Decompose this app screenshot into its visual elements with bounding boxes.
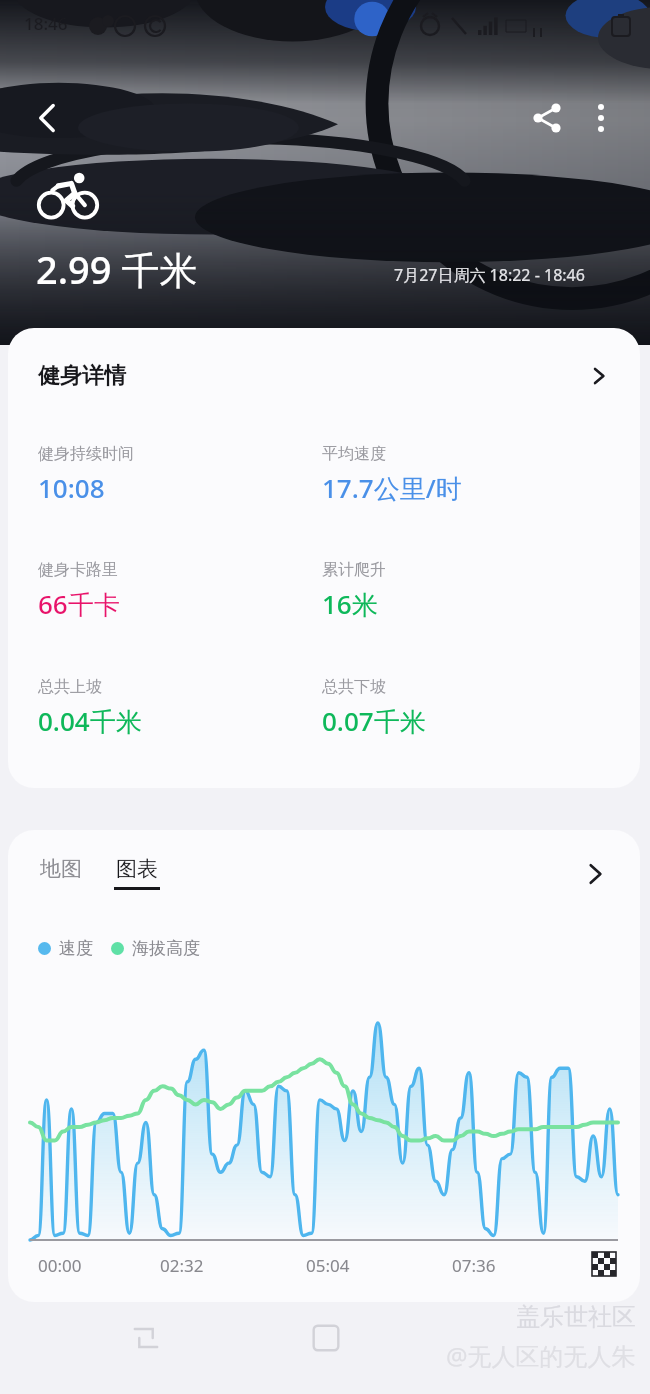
button[interactable]: 健身详情: [8, 328, 640, 424]
staticText: 07:36: [452, 1254, 496, 1277]
button[interactable]: Open chart: [574, 852, 618, 896]
staticText: 海拔高度: [132, 938, 200, 959]
staticText: 18:46: [24, 12, 68, 35]
staticText: 10:08: [38, 470, 105, 505]
button[interactable]: More options: [575, 92, 627, 144]
staticText: 速度: [59, 938, 93, 959]
staticText: 图表: [116, 856, 158, 882]
staticText: 00:00: [38, 1254, 82, 1277]
staticText: 地图: [40, 856, 82, 882]
staticText: 健身卡路里: [38, 560, 118, 580]
button[interactable]: Recents: [118, 1310, 174, 1366]
staticText: 盖乐世社区: [516, 1302, 636, 1332]
staticText: 总共下坡: [322, 677, 386, 697]
button[interactable]: 图表: [114, 856, 160, 890]
staticText: 累计爬升: [322, 560, 386, 580]
button[interactable]: Share: [521, 92, 573, 144]
staticText: 7月27日周六 18:22 - 18:46: [394, 264, 585, 286]
staticText: 16米: [322, 586, 378, 622]
button[interactable]: Back: [22, 92, 74, 144]
staticText: 05:04: [306, 1254, 350, 1277]
staticText: 0.04千米: [38, 703, 142, 739]
button[interactable]: 地图: [38, 856, 84, 882]
staticText: 66千卡: [38, 586, 120, 622]
staticText: 2.99 千米: [36, 243, 198, 295]
staticText: 健身详情: [38, 362, 126, 390]
staticText: 17.7公里/时: [322, 470, 462, 506]
button[interactable]: Home: [298, 1310, 354, 1366]
staticText: 健身持续时间: [38, 444, 134, 464]
staticText: @无人区的无人朱: [446, 1339, 636, 1372]
staticText: 02:32: [160, 1254, 204, 1277]
staticText: 0.07千米: [322, 703, 426, 739]
staticText: 总共上坡: [38, 677, 102, 697]
staticText: 平均速度: [322, 444, 386, 464]
